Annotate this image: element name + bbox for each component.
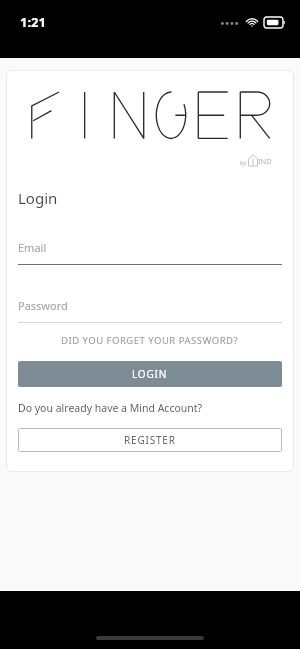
staticText: Password — [18, 298, 68, 313]
button[interactable]: Password — [18, 298, 282, 323]
staticText: by — [240, 159, 247, 166]
staticText: Login — [18, 188, 58, 208]
staticText: LOGIN — [132, 367, 168, 381]
staticText: REGISTER — [124, 433, 176, 447]
button[interactable]: REGISTER — [18, 428, 282, 452]
staticText: Do you already have a Mind Account? — [18, 401, 203, 415]
staticText: 1:21 — [20, 13, 46, 31]
button[interactable]: LOGIN — [18, 361, 282, 387]
button[interactable]: DID YOU FORGET YOUR PASSWORD? — [18, 334, 282, 347]
staticText: IND — [258, 156, 272, 166]
staticText: DID YOU FORGET YOUR PASSWORD? — [61, 334, 239, 347]
button[interactable]: Email — [18, 240, 282, 265]
staticText: Email — [18, 240, 47, 255]
